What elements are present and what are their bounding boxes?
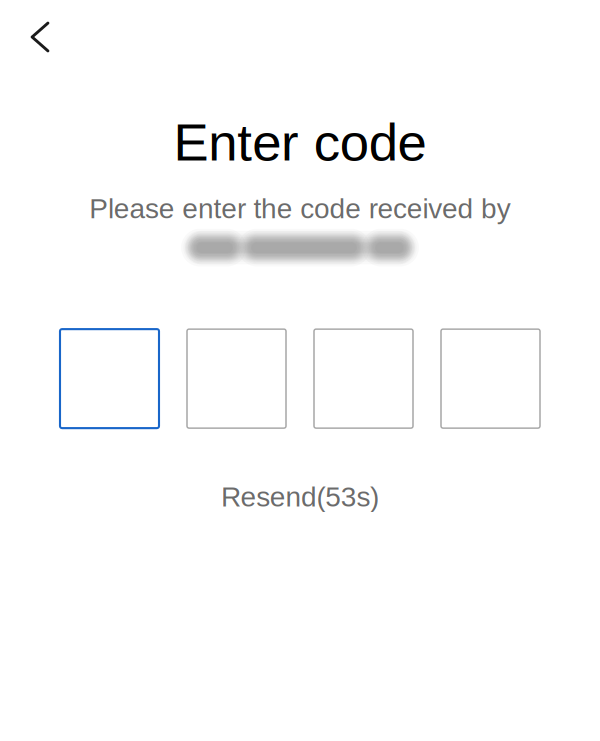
- button[interactable]: Back: [11, 8, 69, 66]
- button[interactable]: Resend(53s): [221, 481, 379, 512]
- button[interactable]: Code digit 2: [187, 329, 286, 428]
- staticText: Enter code: [173, 113, 426, 171]
- staticText: Resend(53s): [221, 481, 379, 512]
- button[interactable]: Code digit 3: [314, 329, 413, 428]
- button[interactable]: Code digit 4: [441, 329, 540, 428]
- staticText: Please enter the code received by: [89, 193, 511, 224]
- button[interactable]: Code digit 1: [60, 329, 159, 428]
